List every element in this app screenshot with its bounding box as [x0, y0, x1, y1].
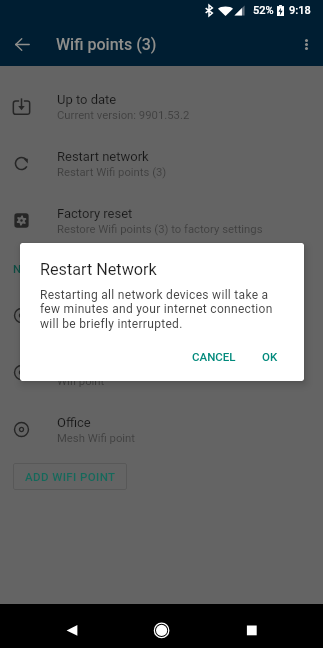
- button[interactable]: Office: [0, 401, 323, 458]
- staticText: Wifi point: [57, 375, 105, 388]
- button[interactable]: Restart network: [0, 135, 323, 192]
- staticText: Wifi points (3): [56, 35, 157, 54]
- staticText: 52%: [253, 4, 274, 17]
- staticText: Living room: [57, 301, 125, 316]
- button[interactable]: Back: [8, 30, 36, 58]
- staticText: ADD WIFI POINT: [25, 470, 116, 483]
- button[interactable]: Up to date: [0, 78, 323, 135]
- button[interactable]: Bedroom: [0, 344, 323, 401]
- staticText: Up to date: [57, 92, 117, 107]
- staticText: Factory reset: [57, 206, 133, 221]
- button[interactable]: Factory reset: [0, 192, 323, 249]
- button[interactable]: Living room: [0, 287, 323, 344]
- staticText: Restart Wifi points (3): [57, 166, 167, 179]
- staticText: Wifi point: [57, 318, 105, 331]
- staticText: Current version: 9901.53.2: [57, 109, 190, 122]
- staticText: OK: [262, 350, 278, 363]
- staticText: CANCEL: [192, 350, 236, 363]
- staticText: Restarting all network devices will take…: [40, 288, 276, 331]
- button[interactable]: CANCEL: [179, 340, 249, 373]
- staticText: Office: [57, 415, 91, 430]
- staticText: Restart Network: [40, 260, 157, 279]
- button[interactable]: ADD WIFI POINT: [13, 463, 127, 490]
- button[interactable]: More options: [292, 30, 320, 58]
- staticText: Restore Wifi points (3) to factory setti…: [57, 223, 263, 236]
- staticText: NETWORK: [13, 262, 68, 275]
- staticText: Mesh Wifi point: [57, 432, 136, 445]
- button[interactable]: OK: [249, 340, 291, 373]
- staticText: Restart network: [57, 149, 149, 164]
- staticText: 9:18: [289, 4, 311, 17]
